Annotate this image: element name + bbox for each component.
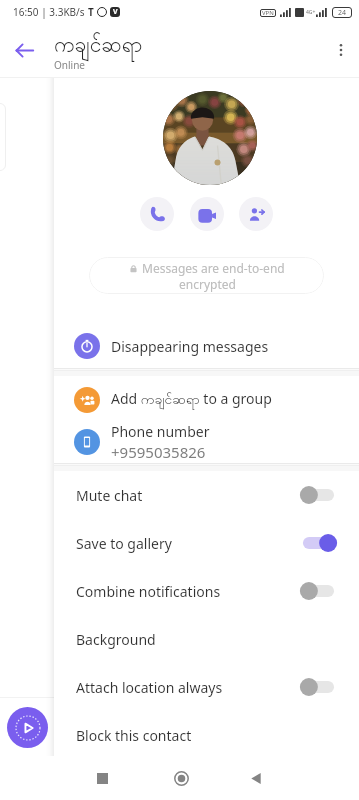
button[interactable]: Add ကချင်ဆရာ to a group — [54, 376, 359, 424]
staticText: Combine notifications — [76, 582, 300, 601]
button[interactable]: Attach location always — [54, 663, 359, 711]
staticText: Mute chat — [76, 486, 300, 505]
staticText: ကချင်ဆရာ — [54, 31, 143, 62]
button[interactable]: Background — [54, 615, 359, 663]
button[interactable]: Call — [140, 197, 174, 231]
button[interactable]: Back — [234, 756, 278, 800]
button[interactable]: Phone number — [54, 418, 359, 466]
button[interactable]: Home — [159, 756, 203, 800]
button[interactable]: Combine notifications — [54, 567, 359, 615]
staticText: Save to gallery — [76, 534, 300, 553]
button[interactable]: Save to gallery — [54, 519, 359, 567]
staticText: V — [113, 7, 118, 17]
button[interactable]: Play voice message — [7, 707, 48, 748]
button[interactable]: More options — [323, 32, 359, 68]
staticText: encrypted — [179, 276, 236, 292]
staticText: Disappearing messages — [111, 337, 269, 356]
staticText: Phone number — [111, 422, 210, 441]
staticText: +9595035826 — [111, 442, 206, 462]
button[interactable]: Messages are end-to-end — [89, 257, 324, 294]
staticText: Online — [54, 58, 85, 72]
staticText: T — [88, 5, 94, 19]
button[interactable]: Add contact — [239, 197, 273, 231]
staticText: 24 — [338, 8, 347, 18]
staticText: 16:50 | 3.3KB/s — [13, 5, 85, 19]
button[interactable]: Mute chat — [54, 471, 359, 519]
staticText: VPN — [262, 9, 274, 17]
staticText: Add ကချင်ဆရာ to a group — [111, 389, 272, 411]
button[interactable]: Video call — [190, 197, 224, 231]
staticText: Block this contact — [76, 726, 192, 745]
button[interactable]: Block this contact — [54, 711, 359, 759]
button[interactable]: Back — [6, 32, 42, 68]
staticText: Attach location always — [76, 678, 300, 697]
button[interactable]: Disappearing messages — [54, 322, 359, 370]
button[interactable]: Recents — [80, 756, 124, 800]
staticText: Messages are end-to-end — [142, 260, 285, 276]
staticText: Background — [76, 630, 156, 649]
staticText: 4G+ — [306, 9, 316, 16]
button[interactable]: Profile photo — [163, 91, 257, 185]
